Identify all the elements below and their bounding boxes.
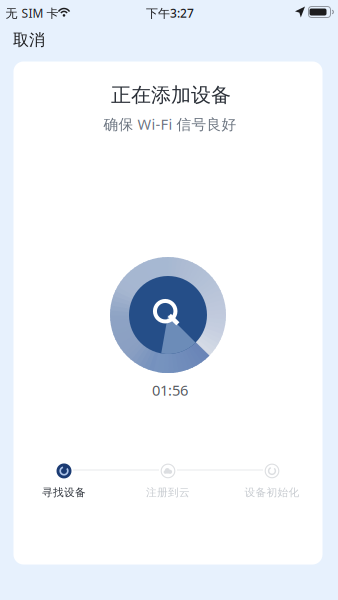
button[interactable]: 设备初始化 xyxy=(240,460,304,502)
staticText: 寻找设备 xyxy=(42,486,86,499)
staticText: 01:56 xyxy=(152,380,188,400)
button[interactable]: 取消 xyxy=(4,24,54,56)
staticText: 确保 Wi-Fi 信号良好 xyxy=(103,114,236,134)
staticText: 取消 xyxy=(13,30,45,50)
staticText: 正在添加设备 xyxy=(111,83,231,107)
button[interactable]: 寻找设备 xyxy=(32,460,96,502)
staticText: 下午3:27 xyxy=(146,5,194,21)
staticText: 设备初始化 xyxy=(244,486,299,499)
staticText: 注册到云 xyxy=(146,486,190,499)
button[interactable]: 注册到云 xyxy=(136,460,200,502)
staticText: 无 SIM 卡 xyxy=(5,5,58,21)
